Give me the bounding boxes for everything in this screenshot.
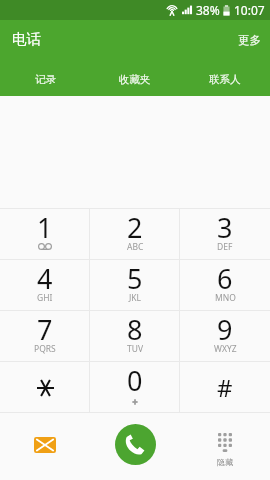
staticText: TUV — [127, 343, 144, 355]
button[interactable]: 4 — [0, 260, 90, 310]
staticText: 记录 — [35, 73, 56, 86]
button[interactable]: # — [180, 362, 270, 412]
button[interactable]: 8 — [90, 311, 180, 361]
button[interactable]: 2 — [90, 209, 180, 259]
staticText: 9 — [217, 311, 233, 345]
staticText: 1 — [37, 209, 53, 243]
staticText: 5 — [127, 260, 143, 294]
button[interactable]: 隐藏 — [180, 413, 270, 480]
staticText: 2 — [127, 209, 143, 243]
staticText: 6 — [217, 260, 233, 294]
button[interactable]: Message — [0, 413, 90, 480]
button[interactable]: 1 — [0, 209, 90, 259]
staticText: 4 — [37, 260, 53, 294]
staticText: 10:07 — [234, 2, 265, 18]
button[interactable]: Call — [90, 413, 180, 480]
button[interactable]: 更多 — [229, 20, 270, 60]
staticText: 3 — [217, 209, 233, 243]
staticText: JKL — [129, 292, 142, 304]
staticText: WXYZ — [214, 343, 237, 355]
staticText: GHI — [37, 292, 53, 304]
button[interactable]: 3 — [180, 209, 270, 259]
staticText: 38% — [196, 2, 220, 18]
button[interactable]: 5 — [90, 260, 180, 310]
staticText: 7 — [37, 311, 53, 345]
staticText: PQRS — [34, 343, 56, 355]
staticText: 电话 — [12, 30, 41, 48]
button[interactable]: 联系人 — [180, 60, 270, 96]
staticText: 隐藏 — [217, 457, 233, 467]
staticText: DEF — [217, 241, 233, 253]
button[interactable]: 9 — [180, 311, 270, 361]
staticText: ABC — [127, 241, 144, 253]
button[interactable]: 7 — [0, 311, 90, 361]
staticText: 0 — [127, 362, 143, 396]
button[interactable]: 6 — [180, 260, 270, 310]
staticText: 8 — [127, 311, 143, 345]
staticText: 收藏夹 — [119, 73, 151, 86]
button[interactable]: 记录 — [0, 60, 90, 96]
staticText: MNO — [215, 292, 236, 304]
button[interactable]: 收藏夹 — [90, 60, 180, 96]
staticText: # — [217, 371, 233, 404]
staticText: 更多 — [238, 33, 261, 47]
staticText: 联系人 — [209, 73, 241, 86]
button[interactable]: 0 — [90, 362, 180, 412]
button[interactable] — [0, 362, 90, 412]
